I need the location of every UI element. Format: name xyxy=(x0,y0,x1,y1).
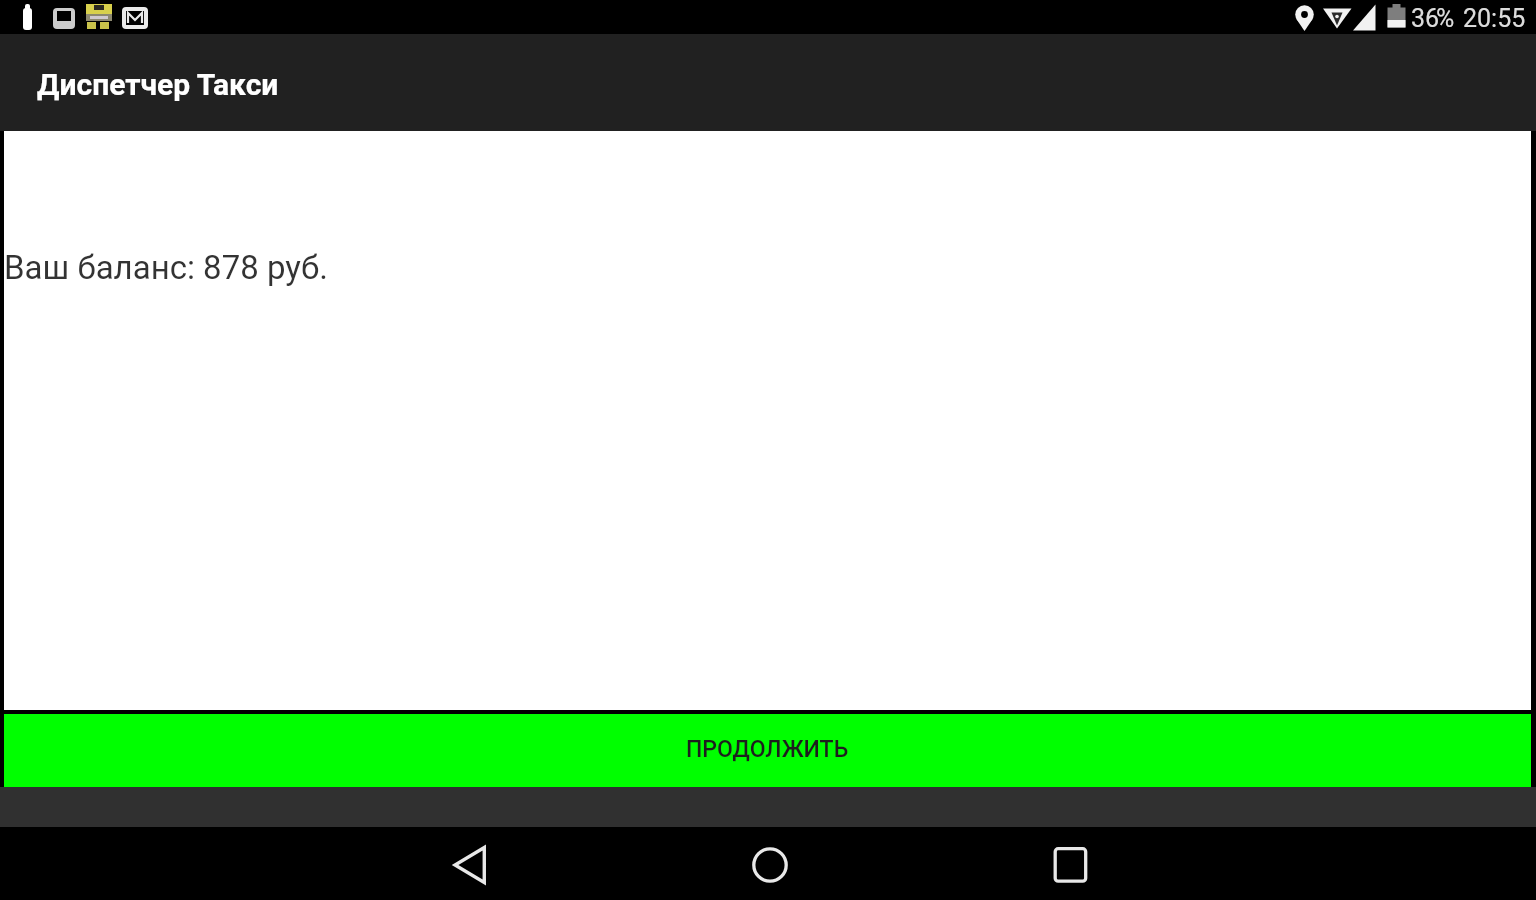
staticText: 20:55 xyxy=(1463,4,1526,33)
staticText: Ваш баланс: 878 руб. xyxy=(4,248,328,287)
staticText: 36 xyxy=(1411,4,1440,33)
staticText: Диспетчер Такси xyxy=(37,67,279,102)
button[interactable]: Back xyxy=(422,830,518,899)
staticText: ПРОДОЛЖИТЬ xyxy=(686,736,849,763)
staticText: % xyxy=(1436,4,1455,33)
button[interactable]: ПРОДОЛЖИТЬ xyxy=(4,714,1531,787)
button[interactable]: Home xyxy=(722,830,818,899)
button[interactable]: Recents xyxy=(1022,830,1118,899)
